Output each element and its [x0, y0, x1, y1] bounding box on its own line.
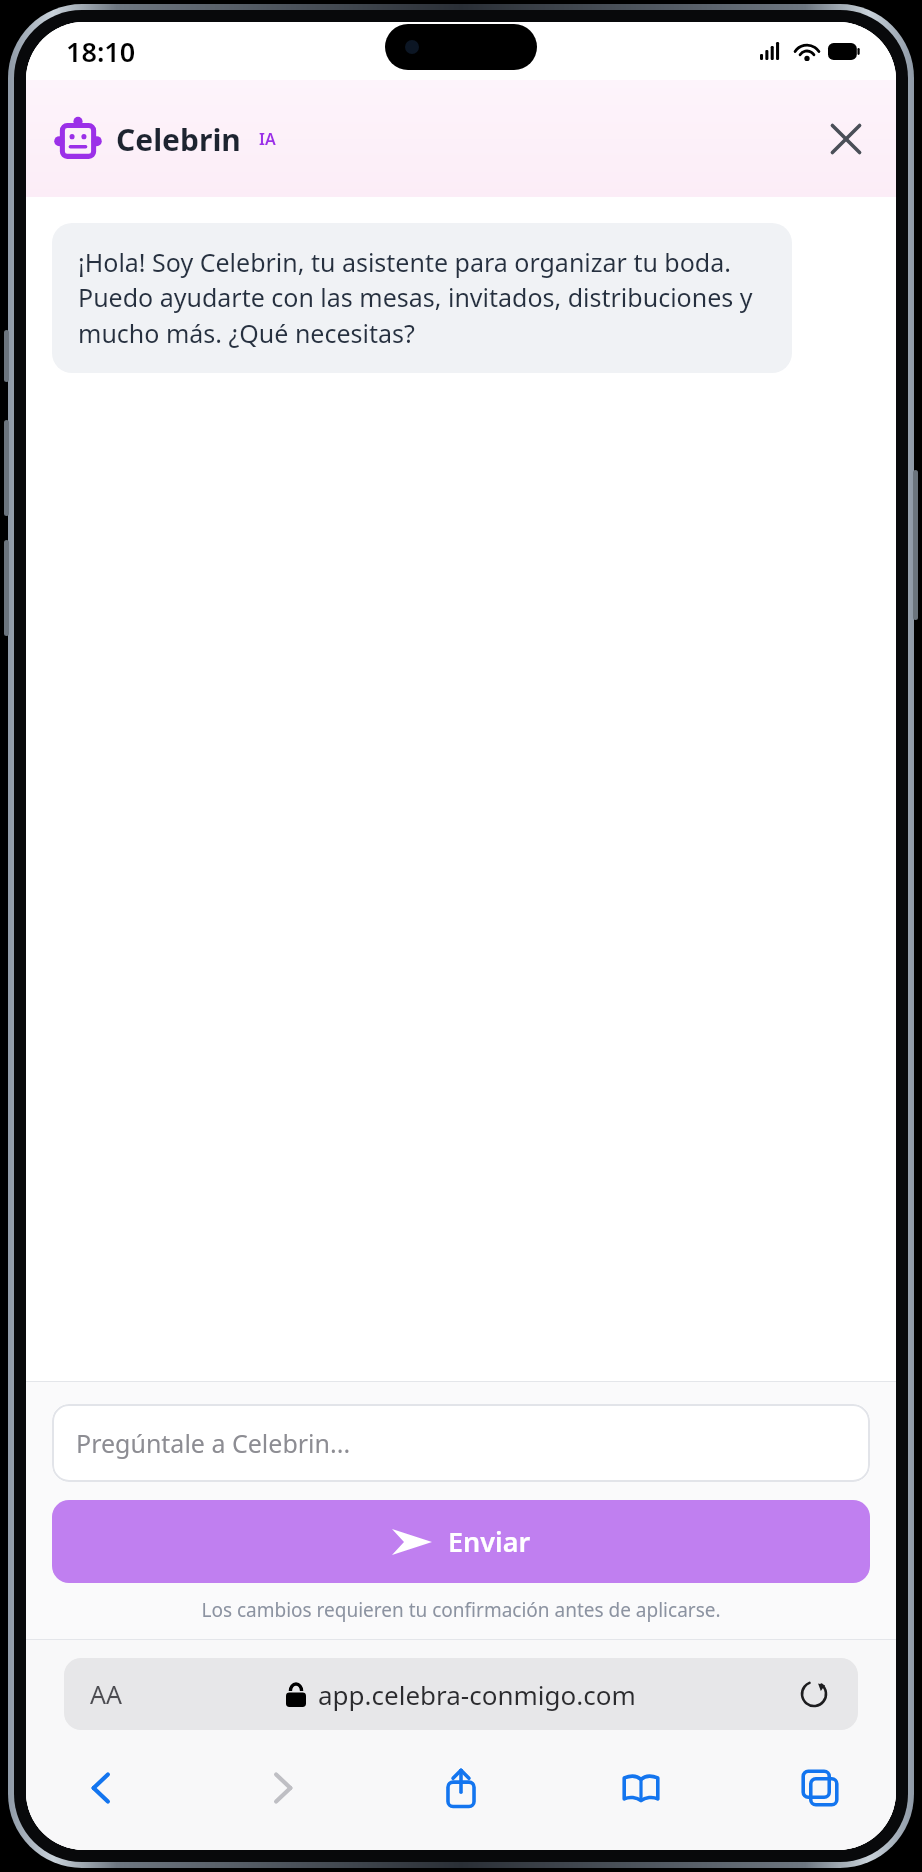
staticText: IA: [259, 128, 276, 150]
button[interactable]: Pestañas: [788, 1756, 852, 1820]
staticText: 18:10: [66, 33, 136, 70]
staticText: Pregúntale a Celebrin...: [76, 1426, 351, 1460]
staticText: app.celebra-conmigo.com: [318, 1677, 636, 1712]
button[interactable]: Pregúntale a Celebrin...: [52, 1404, 870, 1482]
button[interactable]: Compartir: [429, 1756, 493, 1820]
staticText: Celebrin: [116, 119, 241, 160]
staticText: AA: [90, 1677, 122, 1711]
button[interactable]: ¡Hola! Soy Celebrin, tu asistente para o…: [52, 223, 792, 373]
button[interactable]: Cerrar: [818, 111, 874, 167]
staticText: Los cambios requieren tu confirmación an…: [52, 1597, 870, 1623]
button[interactable]: Atrás: [70, 1756, 134, 1820]
button[interactable]: Recargar: [792, 1672, 836, 1716]
button[interactable]: AA: [64, 1658, 858, 1730]
button[interactable]: Enviar: [52, 1500, 870, 1583]
button[interactable]: Marcadores: [609, 1756, 673, 1820]
staticText: ¡Hola! Soy Celebrin, tu asistente para o…: [78, 245, 766, 351]
staticText: Enviar: [448, 1523, 531, 1560]
button[interactable]: Adelante: [250, 1756, 314, 1820]
